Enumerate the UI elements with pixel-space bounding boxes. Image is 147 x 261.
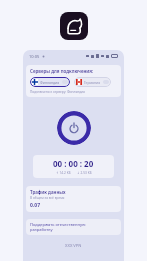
staticText: Финляндия xyxy=(40,80,60,85)
staticText: ↑ 14.2 КБ xyxy=(56,171,71,175)
button[interactable]: Германия xyxy=(74,77,111,87)
staticText: В общем за всё время xyxy=(30,196,65,200)
button[interactable]: 00 : 00 : 20 xyxy=(33,155,114,178)
staticText: 00 : 00 : 20 xyxy=(53,158,94,169)
staticText: Поддержать отечественную разработку xyxy=(30,222,86,232)
staticText: Германия xyxy=(84,80,101,85)
button[interactable]: Трафик данных xyxy=(26,186,121,212)
button[interactable]: Финляндия xyxy=(30,77,70,87)
staticText: 0.07 xyxy=(30,202,40,209)
staticText: 10:05 xyxy=(29,54,40,59)
staticText: ↓ 2.53 КБ xyxy=(77,171,92,175)
button[interactable]: Power toggle xyxy=(57,111,91,145)
staticText: Серверы для подключения: xyxy=(30,68,94,74)
button[interactable]: Серверы для подключения: xyxy=(26,65,121,97)
staticText: XXX VPN xyxy=(65,243,82,248)
staticText: Трафик данных xyxy=(30,189,66,195)
button[interactable]: Поддержать отечественную разработку xyxy=(26,219,121,235)
staticText: Подключено к серверу: Финляндия xyxy=(30,90,85,94)
button[interactable]: App icon xyxy=(60,12,88,40)
